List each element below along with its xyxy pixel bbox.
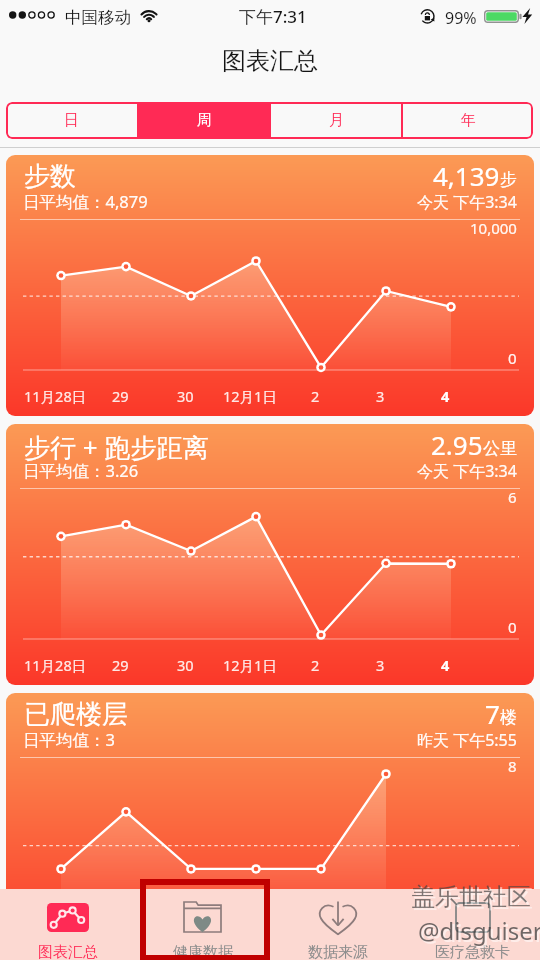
staticText: 图表汇总 [222, 46, 318, 76]
staticText: 步 [500, 169, 517, 190]
staticText: 0 [508, 617, 517, 637]
staticText: 今天 下午3:34 [417, 191, 517, 213]
staticText: 11月28日 [24, 386, 87, 406]
staticText: 日 [64, 111, 79, 130]
staticText: 11月28日 [24, 655, 87, 675]
staticText: 盖乐世社区 [413, 884, 533, 914]
button[interactable]: 周 [139, 102, 269, 139]
button[interactable]: 日 [6, 102, 137, 139]
staticText: 7 [485, 696, 500, 731]
staticText: 0 [508, 886, 517, 906]
staticText: 3 [376, 386, 385, 406]
staticText: 已爬楼层 [24, 698, 128, 731]
button[interactable]: 步行 + 跑步距离 [6, 424, 534, 685]
staticText: 11月28日 [24, 924, 87, 944]
staticText: 12月1日 [223, 386, 277, 406]
staticText: 下午7:31 [239, 5, 307, 28]
staticText: 年 [461, 111, 476, 130]
staticText: 4 [441, 386, 450, 406]
staticText: 29 [112, 386, 129, 406]
button[interactable]: Health Data [135, 900, 270, 960]
button[interactable]: Chart Summary [0, 900, 135, 960]
button[interactable]: 步数 [6, 155, 534, 416]
staticText: 2 [311, 655, 320, 675]
staticText: 盖乐世社区 [411, 882, 531, 912]
staticText: 昨天 下午5:55 [417, 729, 517, 751]
staticText: 周 [197, 111, 212, 130]
staticText: 医疗急救卡 [435, 943, 510, 960]
staticText: @disguiser [418, 914, 540, 947]
staticText: 99% [445, 7, 477, 29]
staticText: 6 [508, 487, 517, 507]
staticText: 月 [329, 111, 344, 130]
staticText: 图表汇总 [38, 943, 98, 960]
staticText: 0 [508, 348, 517, 368]
staticText: 健康数据 [173, 943, 233, 960]
staticText: 30 [177, 386, 194, 406]
button[interactable]: 月 [271, 102, 401, 139]
staticText: 步行 + 跑步距离 [24, 429, 209, 465]
staticText: 12月1日 [223, 924, 277, 944]
staticText: 4 [441, 924, 450, 944]
staticText: 日平均值：4,879 [23, 190, 148, 213]
staticText: 楼 [500, 707, 517, 728]
staticText: 8 [508, 756, 517, 776]
staticText: 日平均值：3 [23, 728, 115, 751]
staticText: 公里 [483, 438, 517, 459]
staticText: 3 [376, 655, 385, 675]
staticText: @disguiser [420, 916, 540, 949]
staticText: 日平均值：3.26 [23, 459, 139, 482]
staticText: 数据来源 [308, 943, 368, 960]
staticText: 2.95 [431, 427, 483, 462]
staticText: 步数 [24, 160, 76, 193]
staticText: 中国移动 [65, 7, 131, 28]
button[interactable]: Data Sources [270, 900, 405, 960]
staticText: 今天 下午3:34 [417, 460, 517, 482]
staticText: 10,000 [470, 218, 517, 238]
button[interactable]: Medical ID [405, 900, 540, 960]
staticText: 30 [177, 655, 194, 675]
button[interactable]: 已爬楼层 [6, 693, 534, 954]
staticText: 30 [177, 924, 194, 944]
staticText: 12月1日 [223, 655, 277, 675]
staticText: 29 [112, 655, 129, 675]
staticText: 4 [441, 655, 450, 675]
button[interactable]: 年 [403, 102, 533, 139]
staticText: 2 [311, 386, 320, 406]
staticText: 4,139 [433, 158, 500, 193]
